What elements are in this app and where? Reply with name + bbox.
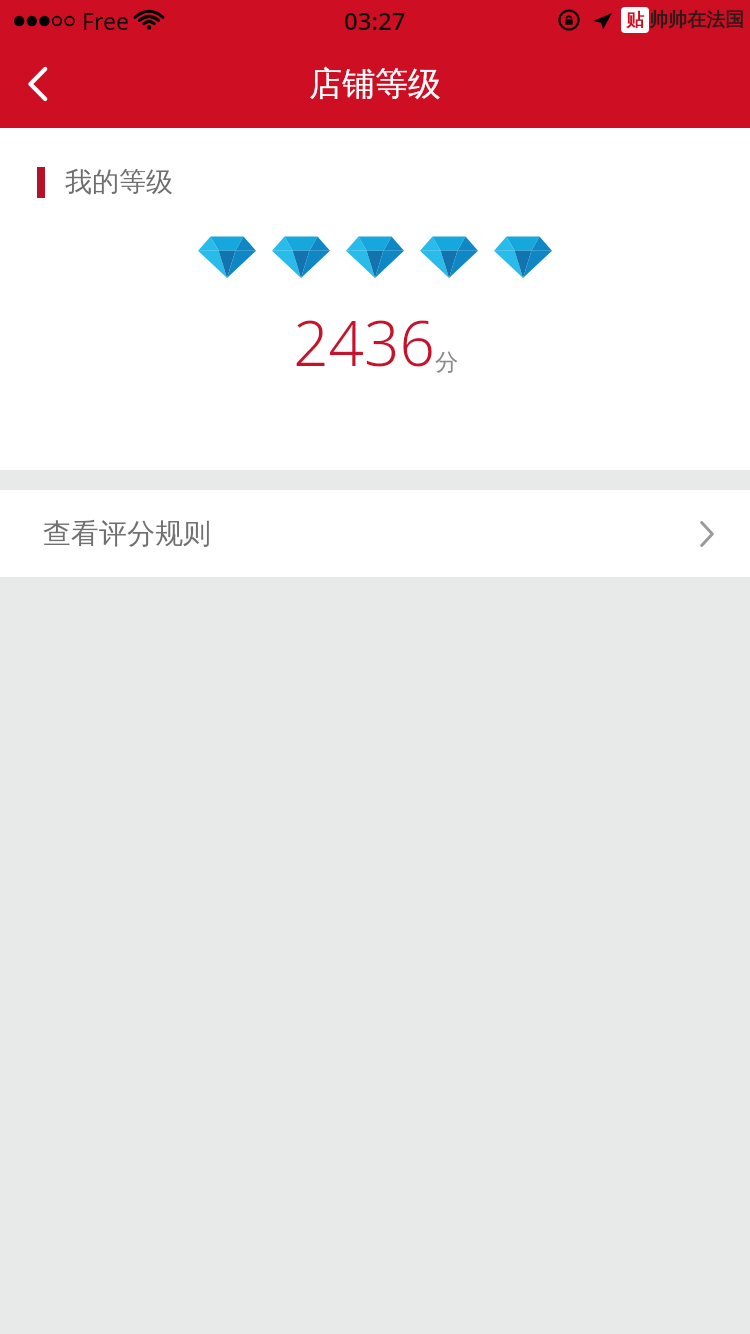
- staticText: 查看评分规则: [43, 516, 211, 551]
- staticText: 2436: [293, 300, 435, 384]
- button[interactable]: 查看评分规则: [0, 490, 750, 577]
- staticText: 帅帅在法国: [649, 8, 744, 32]
- staticText: 店铺等级: [309, 63, 441, 105]
- staticText: 分: [435, 348, 458, 377]
- staticText: 我的等级: [65, 165, 173, 199]
- staticText: Free: [82, 5, 129, 36]
- staticText: 03:27: [344, 4, 406, 37]
- staticText: 贴: [626, 9, 644, 32]
- button[interactable]: Back: [0, 46, 76, 122]
